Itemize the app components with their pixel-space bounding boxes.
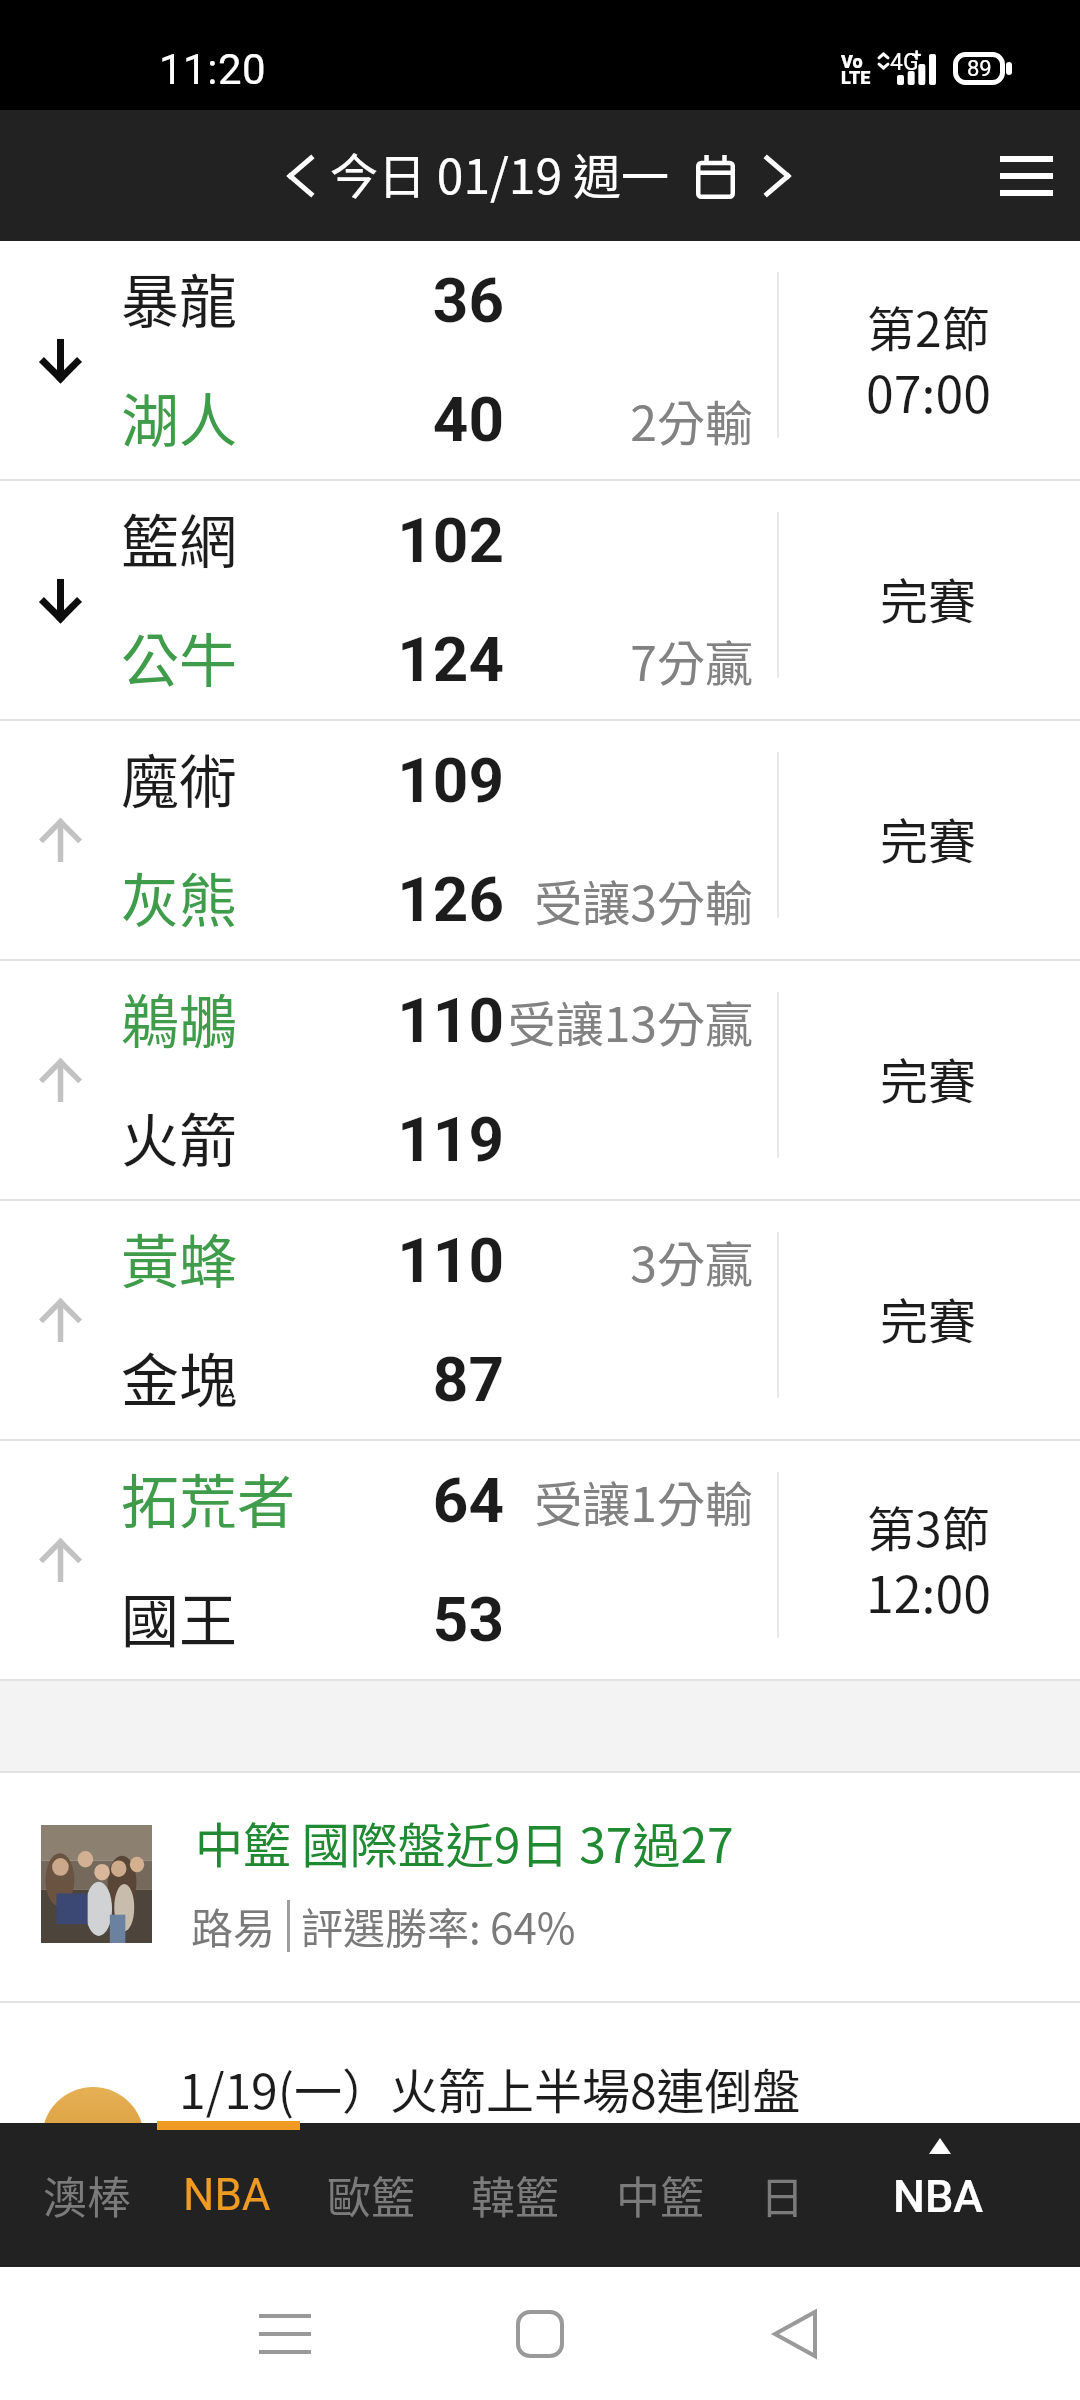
staticText: 受讓13分贏 — [500, 986, 753, 1056]
button[interactable]: NBA — [165, 2123, 289, 2267]
staticText: 韓籃 — [471, 2163, 559, 2227]
button[interactable]: 拓荒者 — [0, 1441, 1080, 1681]
staticText: 4G — [890, 49, 919, 76]
staticText: 12:00 — [866, 1555, 991, 1627]
staticText: 歐籃 — [327, 2163, 415, 2227]
button[interactable]: Pick date — [687, 148, 743, 204]
staticText: 火箭 — [121, 1095, 238, 1179]
staticText: 124 — [344, 623, 504, 696]
staticText: 路易 — [191, 1895, 276, 1956]
staticText: 完賽 — [880, 1043, 977, 1113]
staticText: 完賽 — [880, 563, 977, 633]
staticText: 第3節 — [867, 1491, 990, 1561]
staticText: 拓荒者 — [121, 1456, 296, 1540]
staticText: 受讓3分輸 — [500, 865, 753, 935]
staticText: 完賽 — [880, 1283, 977, 1353]
staticText: 3分贏 — [500, 1226, 753, 1296]
staticText: 119 — [344, 1103, 504, 1176]
staticText: 11:20 — [159, 45, 267, 94]
staticText: 36 — [344, 264, 504, 337]
staticText: 2分輸 — [500, 385, 753, 455]
staticText: 完賽 — [880, 803, 977, 873]
staticText: 湖人 — [121, 375, 238, 459]
button[interactable]: NBA — [856, 2123, 1022, 2267]
staticText: 金塊 — [121, 1335, 238, 1419]
staticText: + — [912, 45, 922, 65]
button[interactable]: 日 — [720, 2123, 844, 2267]
button[interactable]: 今日 01/19 週一 — [330, 110, 669, 241]
staticText: 40 — [344, 383, 504, 456]
staticText: 公牛 — [121, 615, 238, 699]
button[interactable]: 黃蜂 — [0, 1201, 1080, 1441]
staticText: 中籃 — [616, 2163, 704, 2227]
staticText: 89 — [967, 56, 992, 82]
button[interactable]: 中籃 — [598, 2123, 722, 2267]
button[interactable]: Recent apps — [230, 2279, 340, 2389]
button[interactable]: 鵜鶘 — [0, 961, 1080, 1201]
staticText: 澳棒 — [43, 2163, 131, 2227]
staticText: 評選勝率: 64% — [301, 1895, 576, 1956]
staticText: 暴龍 — [121, 256, 238, 340]
staticText: 中籃 國際盤近9日 37過27 — [195, 1807, 734, 1877]
staticText: NBA — [183, 2169, 271, 2221]
staticText: 53 — [344, 1583, 504, 1656]
button[interactable]: 籃網 — [0, 481, 1080, 721]
staticText: 109 — [344, 744, 504, 817]
staticText: 魔術 — [121, 736, 238, 820]
staticText: 110 — [344, 984, 504, 1057]
staticText: Vo — [841, 51, 863, 72]
button[interactable]: Previous day — [274, 150, 326, 202]
staticText: 日 — [760, 2163, 804, 2227]
staticText: 受讓1分輸 — [500, 1466, 753, 1536]
staticText: 國王 — [121, 1575, 238, 1659]
staticText: 灰熊 — [121, 855, 238, 939]
staticText: 126 — [344, 863, 504, 936]
staticText: 籃網 — [121, 496, 238, 580]
staticText: 87 — [344, 1343, 504, 1416]
button[interactable]: Back — [740, 2279, 850, 2389]
staticText: 鵜鶘 — [121, 976, 238, 1060]
button[interactable]: 中籃 國際盤近9日 37過27 — [0, 1773, 1080, 2001]
staticText: 第2節 — [867, 291, 990, 361]
button[interactable]: Menu — [986, 136, 1066, 216]
staticText: 07:00 — [866, 355, 991, 427]
staticText: 1/19(一）火箭上半場8連倒盤 — [179, 2053, 801, 2123]
button[interactable]: 暴龍 — [0, 241, 1080, 481]
button[interactable]: 1/19(一）火箭上半場8連倒盤 — [0, 2003, 1080, 2123]
staticText: 今日 01/19 週一 — [330, 138, 669, 208]
button[interactable]: Home — [485, 2279, 595, 2389]
staticText: 7分贏 — [500, 625, 753, 695]
staticText: 黃蜂 — [121, 1216, 238, 1300]
button[interactable]: 魔術 — [0, 721, 1080, 961]
staticText: 102 — [344, 504, 504, 577]
button[interactable]: 澳棒 — [25, 2123, 149, 2267]
staticText: NBA — [893, 2170, 984, 2223]
button[interactable]: Next day — [751, 150, 803, 202]
staticText: LTE — [841, 67, 871, 88]
button[interactable]: 韓籃 — [453, 2123, 577, 2267]
button[interactable]: 歐籃 — [309, 2123, 433, 2267]
staticText: 64 — [344, 1464, 504, 1537]
staticText: 110 — [344, 1224, 504, 1297]
